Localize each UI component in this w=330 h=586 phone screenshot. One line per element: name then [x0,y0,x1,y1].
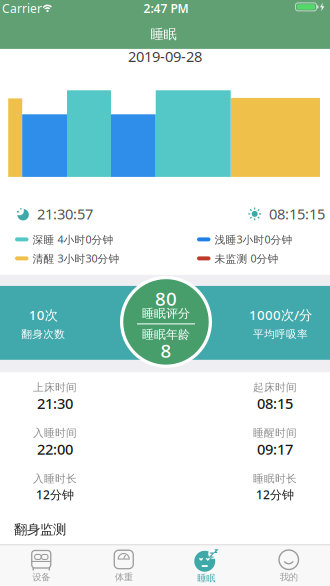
staticText: 08:15 [257,394,293,413]
staticText: 12分钟 [256,487,294,502]
staticText: 翻身监测 [14,521,66,538]
staticText: 12分钟 [36,487,74,502]
staticText: 平均呼吸率 [253,328,308,341]
staticText: 设备 [32,571,50,583]
staticText: 2019-09-28 [128,47,202,66]
staticText: 入睡时长 [33,472,77,485]
staticText: 体重 [115,571,133,583]
staticText: 睡眠 [197,572,215,584]
staticText: 1000次/分 [249,306,312,324]
staticText: 2:47 PM [143,0,188,16]
staticText: 上床时间 [33,381,77,394]
staticText: 浅睡3小时0分钟 [214,232,292,246]
staticText: 睡眠年龄 [142,327,190,342]
staticText: 8 [160,338,171,363]
staticText: 21:30:57 [37,204,93,224]
staticText: 睡眠时长 [253,472,297,485]
staticText: 翻身次数 [21,328,65,341]
staticText: 09:17 [257,439,293,459]
staticText: 80 [155,286,177,311]
staticText: 10次 [29,306,58,324]
staticText: Carrier [2,0,42,16]
staticText: 起床时间 [253,381,297,394]
staticText: 22:00 [37,439,73,459]
staticText: 我的 [280,571,298,583]
staticText: 21:30 [37,394,73,413]
staticText: 深睡 4小时0分钟 [32,232,113,246]
staticText: 08:15:15 [269,204,325,224]
staticText: 清醒 3小时30分钟 [32,251,119,265]
button[interactable]: 我的 [247,545,330,586]
staticText: 睡眠 [150,26,176,43]
staticText: 睡醒时间 [253,426,297,439]
button[interactable]: 体重 [82,545,165,586]
button[interactable]: 睡眠 [165,545,247,586]
button[interactable]: 设备 [0,545,82,586]
staticText: 入睡时间 [33,426,77,439]
staticText: 未监测 0分钟 [214,251,278,265]
staticText: 睡眠评分 [142,306,190,321]
